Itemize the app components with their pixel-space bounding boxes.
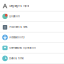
staticText: Accounts & sync <box>9 25 27 28</box>
staticText: Accessibility <box>9 36 24 39</box>
staticText: Date & time <box>9 57 23 60</box>
staticText: Location <box>9 15 19 18</box>
button[interactable]: One-handed operation <box>0 43 64 53</box>
button[interactable]: Date & time <box>0 53 64 64</box>
button[interactable]: Location <box>0 11 64 22</box>
button[interactable]: Accounts & sync <box>0 22 64 32</box>
staticText: One-handed operation <box>9 46 35 49</box>
button[interactable]: Accessibility <box>0 32 64 43</box>
button[interactable]: Language & input <box>0 1 64 11</box>
staticText: Language & input <box>9 4 29 7</box>
